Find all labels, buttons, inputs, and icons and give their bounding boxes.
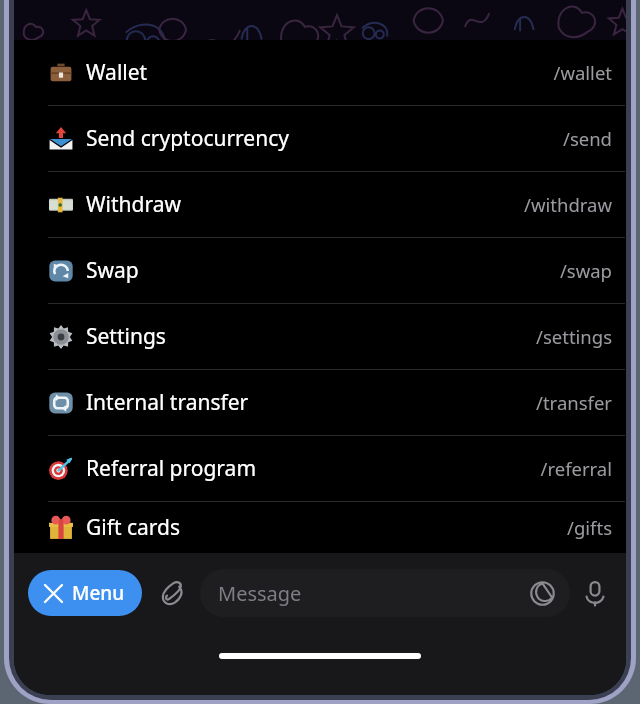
staticText: /send	[563, 126, 612, 151]
button[interactable]: Stickers	[526, 577, 558, 609]
staticText: /swap	[559, 258, 612, 283]
staticText: Referral program	[86, 454, 257, 483]
button[interactable]: Swap	[14, 238, 626, 303]
staticText: /transfer	[536, 390, 612, 415]
button[interactable]: Attach file	[152, 572, 194, 614]
button[interactable]: Record voice message	[574, 572, 616, 614]
staticText: Internal transfer	[86, 388, 249, 417]
staticText: /referral	[540, 456, 612, 481]
staticText: Settings	[86, 322, 166, 351]
staticText: /gifts	[567, 515, 612, 540]
button[interactable]: Gift cards	[14, 502, 626, 553]
button[interactable]: Wallet	[14, 40, 626, 105]
staticText: Gift cards	[86, 513, 181, 542]
button[interactable]: Referral program	[14, 436, 626, 501]
staticText: /withdraw	[524, 192, 612, 217]
staticText: Send cryptocurrency	[86, 124, 289, 153]
staticText: Withdraw	[86, 190, 181, 219]
staticText: /wallet	[553, 60, 612, 85]
button[interactable]: Withdraw	[14, 172, 626, 237]
staticText: /settings	[536, 324, 612, 349]
button[interactable]: Menu	[28, 570, 142, 616]
staticText: Menu	[72, 580, 125, 606]
button[interactable]: Message	[200, 569, 570, 617]
button[interactable]: Settings	[14, 304, 626, 369]
staticText: Swap	[86, 256, 139, 285]
button[interactable]: Send cryptocurrency	[14, 106, 626, 171]
button[interactable]: Internal transfer	[14, 370, 626, 435]
staticText: Wallet	[86, 58, 148, 87]
staticText: Message	[218, 580, 302, 607]
